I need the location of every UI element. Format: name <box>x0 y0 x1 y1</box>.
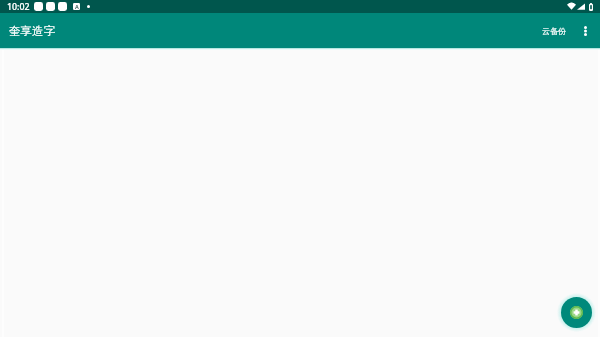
button[interactable]: More options <box>578 19 592 43</box>
button[interactable]: 云备份 <box>538 20 570 42</box>
staticText: 云备份 <box>542 26 566 36</box>
staticText: A <box>75 3 79 10</box>
staticText: 奎享造字 <box>9 24 55 38</box>
button[interactable]: Add new font <box>561 297 592 328</box>
staticText: 10:02 <box>7 1 30 13</box>
